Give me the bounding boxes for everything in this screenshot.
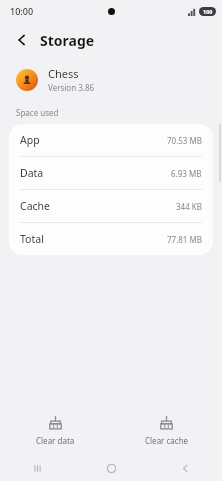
- button[interactable]: Data: [9, 157, 213, 189]
- staticText: 77.81 MB: [167, 234, 202, 245]
- staticText: Space used: [16, 107, 59, 118]
- button[interactable]: Home: [74, 455, 148, 481]
- button[interactable]: Recents: [0, 455, 74, 481]
- staticText: Chess: [48, 66, 79, 81]
- button[interactable]: Clear cache: [111, 412, 222, 450]
- staticText: 344 KB: [176, 201, 202, 212]
- staticText: Version 3.86: [48, 82, 95, 93]
- staticText: Clear cache: [145, 435, 189, 446]
- button[interactable]: App: [9, 124, 213, 156]
- staticText: 70.53 MB: [167, 135, 202, 146]
- staticText: Total: [20, 232, 44, 246]
- staticText: 100: [203, 8, 213, 15]
- staticText: Storage: [40, 31, 95, 50]
- button[interactable]: Back: [148, 455, 222, 481]
- button[interactable]: Clear data: [0, 412, 111, 450]
- staticText: Clear data: [36, 435, 75, 446]
- staticText: 6.93 MB: [171, 168, 202, 179]
- button[interactable]: Back: [10, 28, 34, 52]
- staticText: 10:00: [10, 5, 34, 17]
- staticText: Data: [20, 166, 44, 180]
- staticText: App: [20, 133, 40, 147]
- button[interactable]: Cache: [9, 190, 213, 222]
- button[interactable]: Total: [9, 223, 213, 255]
- staticText: Cache: [20, 199, 50, 213]
